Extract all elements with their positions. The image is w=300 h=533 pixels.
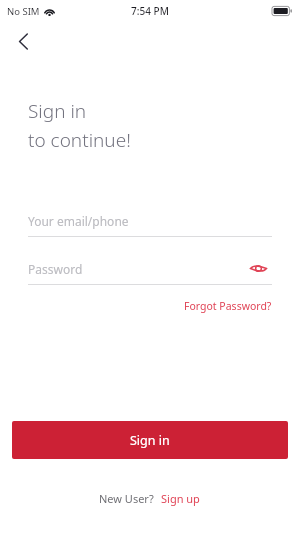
staticText: 7:54 PM: [131, 4, 169, 18]
staticText: Sign in: [28, 98, 87, 124]
staticText: New User?: [99, 491, 154, 506]
button[interactable]: Show password: [244, 254, 272, 282]
staticText: Sign in: [130, 432, 170, 449]
staticText: Your email/phone: [28, 213, 129, 229]
button[interactable]: Sign in: [12, 421, 288, 459]
staticText: to continue!: [28, 127, 131, 153]
button[interactable]: Your email/phone: [28, 206, 272, 236]
staticText: Sign up: [161, 491, 200, 506]
staticText: Password: [28, 261, 83, 277]
button[interactable]: Sign up: [160, 489, 201, 508]
button[interactable]: Password: [28, 254, 238, 284]
staticText: Forgot Password?: [184, 299, 272, 313]
staticText: No SIM: [7, 5, 40, 18]
button[interactable]: Back: [8, 28, 38, 54]
button[interactable]: Forgot Password?: [172, 297, 272, 315]
